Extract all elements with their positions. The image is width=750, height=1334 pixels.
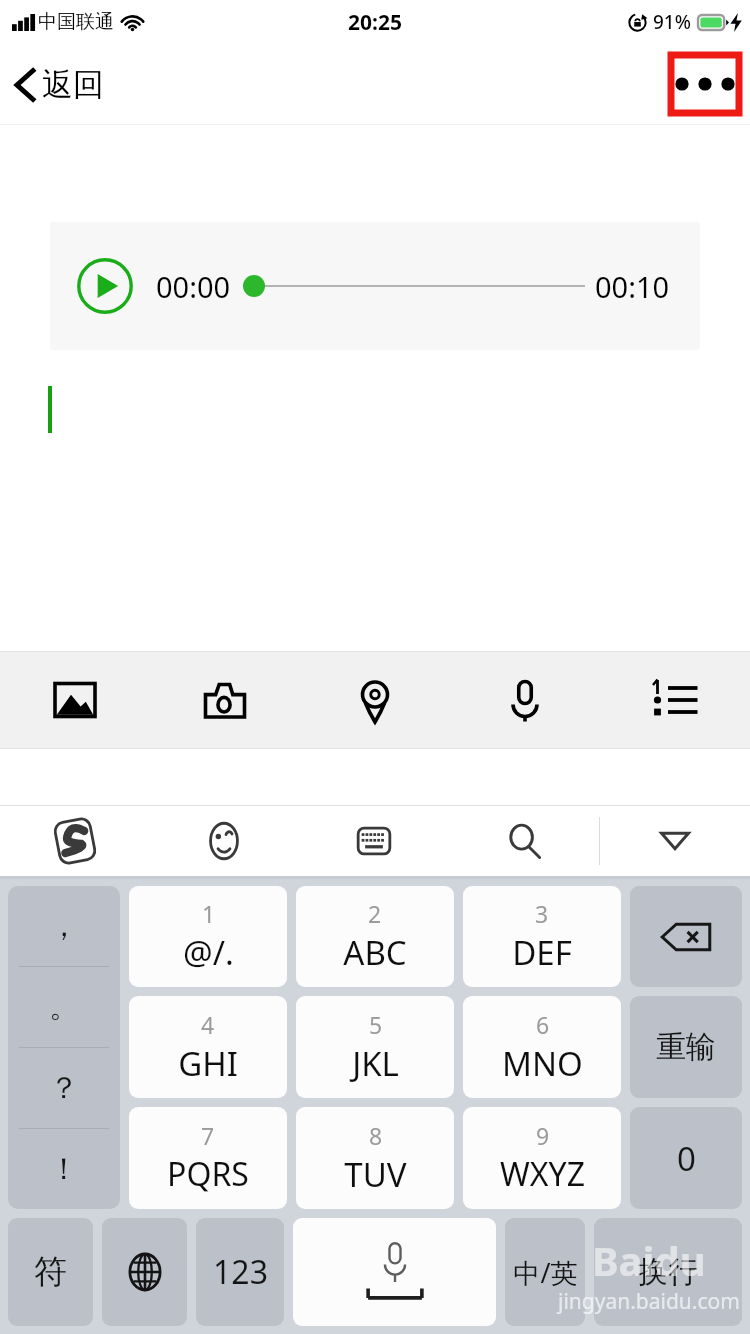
button[interactable]: Emoji bbox=[149, 806, 299, 876]
button[interactable]: Hide keyboard bbox=[600, 806, 750, 876]
staticText: 中/英 bbox=[513, 1254, 578, 1291]
button[interactable]: 。 bbox=[8, 967, 120, 1047]
button[interactable]: Search bbox=[449, 806, 599, 876]
staticText: 1 bbox=[202, 898, 216, 929]
button[interactable]: Photo album bbox=[0, 652, 150, 748]
staticText: 9 bbox=[536, 1120, 550, 1151]
button[interactable]: 6 bbox=[463, 996, 621, 1098]
button[interactable]: Backspace bbox=[630, 886, 742, 987]
button[interactable]: Play bbox=[50, 222, 700, 350]
button[interactable]: 2 bbox=[296, 886, 454, 987]
button[interactable]: 换行 bbox=[594, 1218, 742, 1326]
staticText: 返回 bbox=[42, 65, 104, 104]
staticText: 6 bbox=[536, 1009, 550, 1040]
button[interactable]: 8 bbox=[296, 1107, 454, 1209]
button[interactable]: List bbox=[600, 652, 750, 748]
staticText: 2 bbox=[368, 898, 382, 929]
button[interactable]: ， bbox=[8, 886, 120, 966]
staticText: 8 bbox=[369, 1120, 383, 1151]
staticText: GHI bbox=[178, 1041, 238, 1086]
staticText: ？ bbox=[49, 1069, 79, 1107]
staticText: 4 bbox=[201, 1009, 215, 1040]
button[interactable]: 符 bbox=[8, 1218, 93, 1326]
staticText: 3 bbox=[535, 898, 549, 929]
staticText: 重输 bbox=[656, 1028, 716, 1066]
button[interactable]: ？ bbox=[8, 1048, 120, 1128]
staticText: JKL bbox=[352, 1041, 399, 1086]
staticText: MNO bbox=[502, 1041, 583, 1086]
button[interactable]: Sogou input method bbox=[0, 806, 149, 876]
staticText: WXYZ bbox=[500, 1152, 585, 1196]
staticText: 中国联通 bbox=[38, 10, 114, 34]
button[interactable]: 3 bbox=[463, 886, 621, 987]
staticText: ， bbox=[49, 907, 79, 945]
button[interactable]: Keyboard layout bbox=[299, 806, 449, 876]
staticText: 0 bbox=[677, 1136, 696, 1181]
staticText: ！ bbox=[49, 1150, 79, 1188]
button[interactable]: More options bbox=[671, 55, 739, 113]
staticText: 123 bbox=[213, 1250, 268, 1294]
staticText: 5 bbox=[369, 1009, 383, 1040]
button[interactable]: Location bbox=[300, 652, 450, 748]
button[interactable]: Voice message bbox=[450, 652, 600, 748]
button[interactable]: 返回 bbox=[0, 55, 122, 114]
button[interactable]: 中/英 bbox=[505, 1218, 585, 1326]
button[interactable]: Play bbox=[77, 258, 133, 314]
staticText: 换行 bbox=[638, 1253, 698, 1291]
staticText: DEF bbox=[512, 930, 572, 975]
staticText: ABC bbox=[343, 930, 407, 975]
staticText: 00:00 bbox=[156, 267, 231, 306]
staticText: @/. bbox=[183, 930, 234, 975]
button[interactable]: 4 bbox=[129, 996, 287, 1098]
button[interactable]: 123 bbox=[196, 1218, 284, 1326]
staticText: jingyan.baidu.com bbox=[558, 1287, 740, 1316]
button[interactable]: 7 bbox=[129, 1107, 287, 1209]
staticText: 。 bbox=[49, 988, 79, 1026]
button[interactable]: 0 bbox=[630, 1107, 742, 1209]
button[interactable]: Space, voice input bbox=[293, 1218, 496, 1326]
button[interactable]: 重输 bbox=[630, 996, 742, 1098]
staticText: 91% bbox=[653, 9, 691, 35]
button[interactable]: ！ bbox=[8, 1129, 120, 1209]
staticText: 7 bbox=[201, 1120, 215, 1151]
staticText: 20:25 bbox=[348, 8, 402, 37]
button[interactable]: Switch language bbox=[102, 1218, 187, 1326]
button[interactable]: 9 bbox=[463, 1107, 621, 1209]
button[interactable]: 1 bbox=[129, 886, 287, 987]
button[interactable]: Camera bbox=[150, 652, 300, 748]
staticText: 符 bbox=[34, 1251, 67, 1293]
staticText: TUV bbox=[344, 1152, 407, 1197]
staticText: Baidu bbox=[592, 1233, 706, 1287]
button[interactable]: 5 bbox=[296, 996, 454, 1098]
staticText: PQRS bbox=[167, 1152, 249, 1196]
staticText: 00:10 bbox=[595, 267, 670, 306]
